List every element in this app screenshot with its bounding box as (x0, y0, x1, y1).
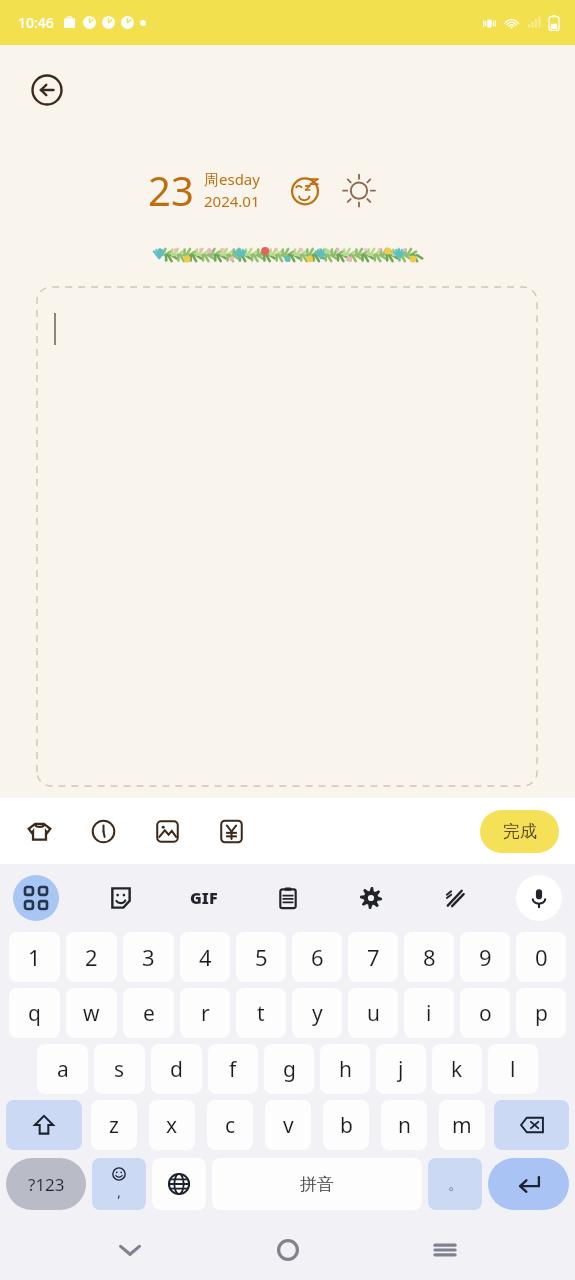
button[interactable]: 0 (516, 932, 566, 982)
staticText: 23 (148, 163, 194, 217)
button[interactable]: Apps (13, 875, 59, 921)
staticText: f (229, 1055, 237, 1084)
button[interactable]: k (432, 1044, 482, 1094)
staticText: q (28, 999, 41, 1028)
button[interactable]: j (376, 1044, 426, 1094)
button[interactable]: Shift (6, 1100, 82, 1150)
button[interactable]: Clipboard (266, 876, 310, 920)
staticText: t (257, 999, 265, 1028)
staticText: 10:46 (18, 13, 54, 32)
staticText: 拼音 (300, 1174, 334, 1195)
staticText: g (283, 1055, 296, 1084)
button[interactable]: 9 (460, 932, 510, 982)
button[interactable]: Voice input (516, 875, 562, 921)
button[interactable]: o (460, 988, 510, 1038)
button[interactable]: w (66, 988, 117, 1038)
button[interactable]: p (516, 988, 566, 1038)
button[interactable]: 完成 (480, 810, 559, 853)
button[interactable]: r (180, 988, 230, 1038)
staticText: o (479, 999, 492, 1028)
button[interactable]: q (9, 988, 60, 1038)
button[interactable]: 拼音 (212, 1158, 422, 1210)
button[interactable]: n (381, 1100, 427, 1150)
button[interactable]: ?123 (6, 1158, 86, 1210)
button[interactable]: Outfit (22, 814, 56, 848)
button[interactable]: t (236, 988, 286, 1038)
staticText: 2024.01 (204, 191, 260, 211)
button[interactable]: Recent apps (418, 1223, 472, 1277)
button[interactable]: g (264, 1044, 314, 1094)
button[interactable]: Back (27, 70, 67, 110)
button[interactable]: z (91, 1100, 137, 1150)
button[interactable]: Weather (342, 173, 376, 207)
button[interactable]: 5 (236, 932, 286, 982)
button[interactable]: Hide keyboard (103, 1223, 157, 1277)
button[interactable]: l (488, 1044, 538, 1094)
staticText: ?123 (28, 1173, 65, 1196)
button[interactable]: c (207, 1100, 253, 1150)
button[interactable]: u (348, 988, 398, 1038)
staticText: 6 (311, 942, 324, 972)
staticText: a (57, 1055, 69, 1084)
staticText: GIF (190, 887, 218, 909)
button[interactable]: y (292, 988, 342, 1038)
staticText: n (398, 1111, 411, 1140)
staticText: 3 (142, 942, 155, 972)
button[interactable]: 。 (428, 1158, 482, 1210)
button[interactable]: Photo (150, 814, 184, 848)
button[interactable]: Mood (288, 173, 322, 207)
staticText: e (143, 999, 155, 1028)
button[interactable]: x (149, 1100, 195, 1150)
staticText: 1 (28, 942, 41, 972)
button[interactable]: 1 (9, 932, 60, 982)
button[interactable]: Expense (214, 814, 248, 848)
button[interactable]: Time (86, 814, 120, 848)
staticText: 。 (448, 1175, 463, 1194)
button[interactable]: v (265, 1100, 311, 1150)
button[interactable]: Home (261, 1223, 315, 1277)
button[interactable]: Sticker (99, 876, 143, 920)
staticText: 9 (479, 942, 492, 972)
staticText: 5 (255, 942, 268, 972)
button[interactable]: d (151, 1044, 202, 1094)
button[interactable]: Settings (349, 876, 393, 920)
button[interactable] (37, 287, 537, 786)
staticText: w (83, 999, 100, 1028)
button[interactable]: 4 (180, 932, 230, 982)
staticText: u (367, 999, 380, 1028)
staticText: h (339, 1055, 352, 1084)
button[interactable]: Handwriting (433, 876, 477, 920)
staticText: 4 (199, 942, 212, 972)
button[interactable]: 3 (123, 932, 174, 982)
staticText: k (451, 1055, 463, 1084)
button[interactable]: Change language (152, 1158, 206, 1210)
staticText: l (510, 1055, 516, 1084)
staticText: b (340, 1111, 353, 1140)
staticText: z (109, 1111, 119, 1140)
button[interactable]: Emoji and comma (92, 1158, 146, 1210)
button[interactable]: Backspace (494, 1100, 569, 1150)
button[interactable]: f (208, 1044, 258, 1094)
button[interactable]: m (439, 1100, 485, 1150)
button[interactable]: 8 (404, 932, 454, 982)
button[interactable]: i (404, 988, 454, 1038)
staticText: j (398, 1055, 404, 1084)
staticText: 0 (535, 942, 548, 972)
button[interactable]: a (37, 1044, 88, 1094)
staticText: , (117, 1181, 122, 1201)
button[interactable]: e (123, 988, 174, 1038)
button[interactable]: b (323, 1100, 369, 1150)
button[interactable]: 2 (66, 932, 117, 982)
staticText: d (170, 1055, 183, 1084)
staticText: p (535, 999, 548, 1028)
staticText: x (166, 1111, 178, 1140)
button[interactable]: h (320, 1044, 370, 1094)
staticText: m (452, 1111, 472, 1140)
button[interactable]: GIF (182, 876, 226, 920)
button[interactable]: Enter (488, 1158, 569, 1210)
button[interactable]: 6 (292, 932, 342, 982)
staticText: v (283, 1111, 294, 1140)
staticText: 2 (85, 942, 98, 972)
button[interactable]: s (94, 1044, 145, 1094)
button[interactable]: 7 (348, 932, 398, 982)
